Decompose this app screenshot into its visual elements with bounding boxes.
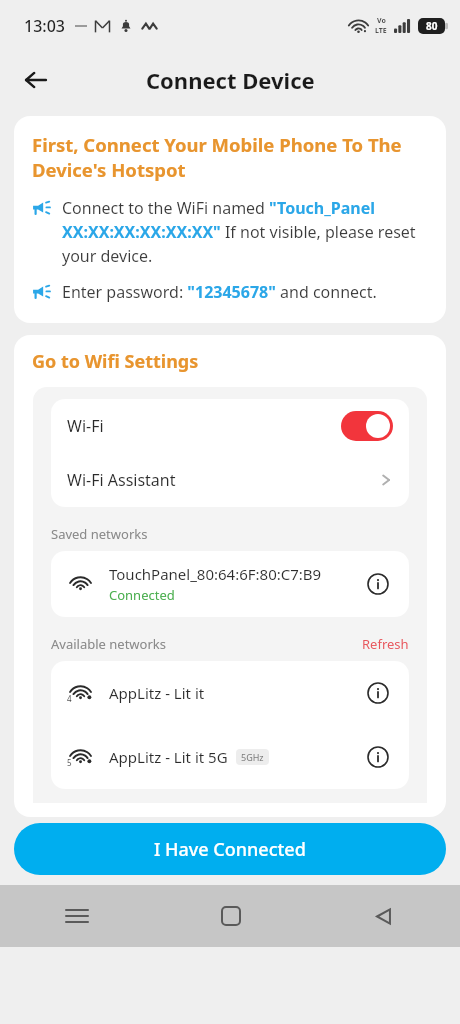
staticText: Connected xyxy=(109,586,175,604)
button[interactable]: Wi-Fi Assistant xyxy=(51,453,409,507)
button[interactable]: Wi-Fi toggle xyxy=(341,411,393,441)
staticText: Available networks xyxy=(51,635,166,653)
staticText: AppLitz - Lit it 5G xyxy=(109,747,228,767)
staticText: Connect Device xyxy=(146,65,315,95)
staticText: Connect to the WiFi named "Touch_Panel X… xyxy=(62,197,430,267)
staticText: Vo xyxy=(377,16,386,26)
button[interactable]: Home xyxy=(154,885,307,947)
button[interactable]: Wi-Fi xyxy=(51,399,409,453)
staticText: I Have Connected xyxy=(154,837,306,862)
staticText: Saved networks xyxy=(51,525,148,543)
staticText: 5 xyxy=(67,757,72,768)
staticText: Wi-Fi xyxy=(67,415,104,437)
staticText: First, Connect Your Mobile Phone To The … xyxy=(32,132,430,183)
button[interactable]: I Have Connected xyxy=(14,823,446,875)
staticText: 80 xyxy=(426,19,438,33)
staticText: 5GHz xyxy=(241,751,264,763)
staticText: 4 xyxy=(67,693,72,704)
staticText: Enter password: "12345678" and connect. xyxy=(62,281,377,303)
staticText: LTE xyxy=(375,26,387,36)
button[interactable]: Network info xyxy=(363,742,393,772)
button[interactable]: Back xyxy=(14,58,58,102)
button[interactable]: 5 xyxy=(51,725,409,789)
button[interactable]: Back xyxy=(307,885,460,947)
button[interactable]: Network info xyxy=(363,678,393,708)
button[interactable]: Network info xyxy=(363,569,393,599)
button[interactable]: TouchPanel_80:64:6F:80:C7:B9 xyxy=(51,551,409,617)
button[interactable]: Recent apps xyxy=(0,885,154,947)
staticText: Go to Wifi Settings xyxy=(32,349,199,374)
button[interactable]: Refresh xyxy=(362,635,409,653)
button[interactable]: 4 xyxy=(51,661,409,725)
staticText: TouchPanel_80:64:6F:80:C7:B9 xyxy=(109,564,322,584)
staticText: Refresh xyxy=(362,635,409,653)
staticText: AppLitz - Lit it xyxy=(109,683,205,703)
staticText: Wi-Fi Assistant xyxy=(67,469,176,491)
staticText: 13:03 xyxy=(24,15,65,37)
